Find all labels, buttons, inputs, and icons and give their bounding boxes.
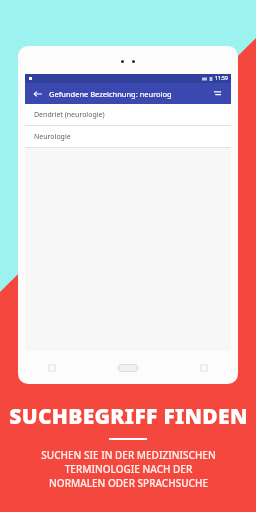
staticText: Neurologie <box>34 132 71 142</box>
button[interactable]: Menu <box>211 87 224 100</box>
staticText: 11:59 <box>215 75 228 82</box>
staticText: Dendriet (neurologie) <box>34 110 105 120</box>
staticText: Gefundene Bezeichnung: neurolog <box>49 89 172 99</box>
button[interactable]: Back <box>32 88 44 100</box>
button[interactable]: Dendriet (neurologie) <box>25 104 231 125</box>
button[interactable]: Neurologie <box>25 126 231 147</box>
staticText: SUCHBEGRIFF FINDEN <box>9 402 248 431</box>
staticText: SUCHEN SIE IN DER MEDIZINISCHEN TERMINOL… <box>41 448 216 490</box>
